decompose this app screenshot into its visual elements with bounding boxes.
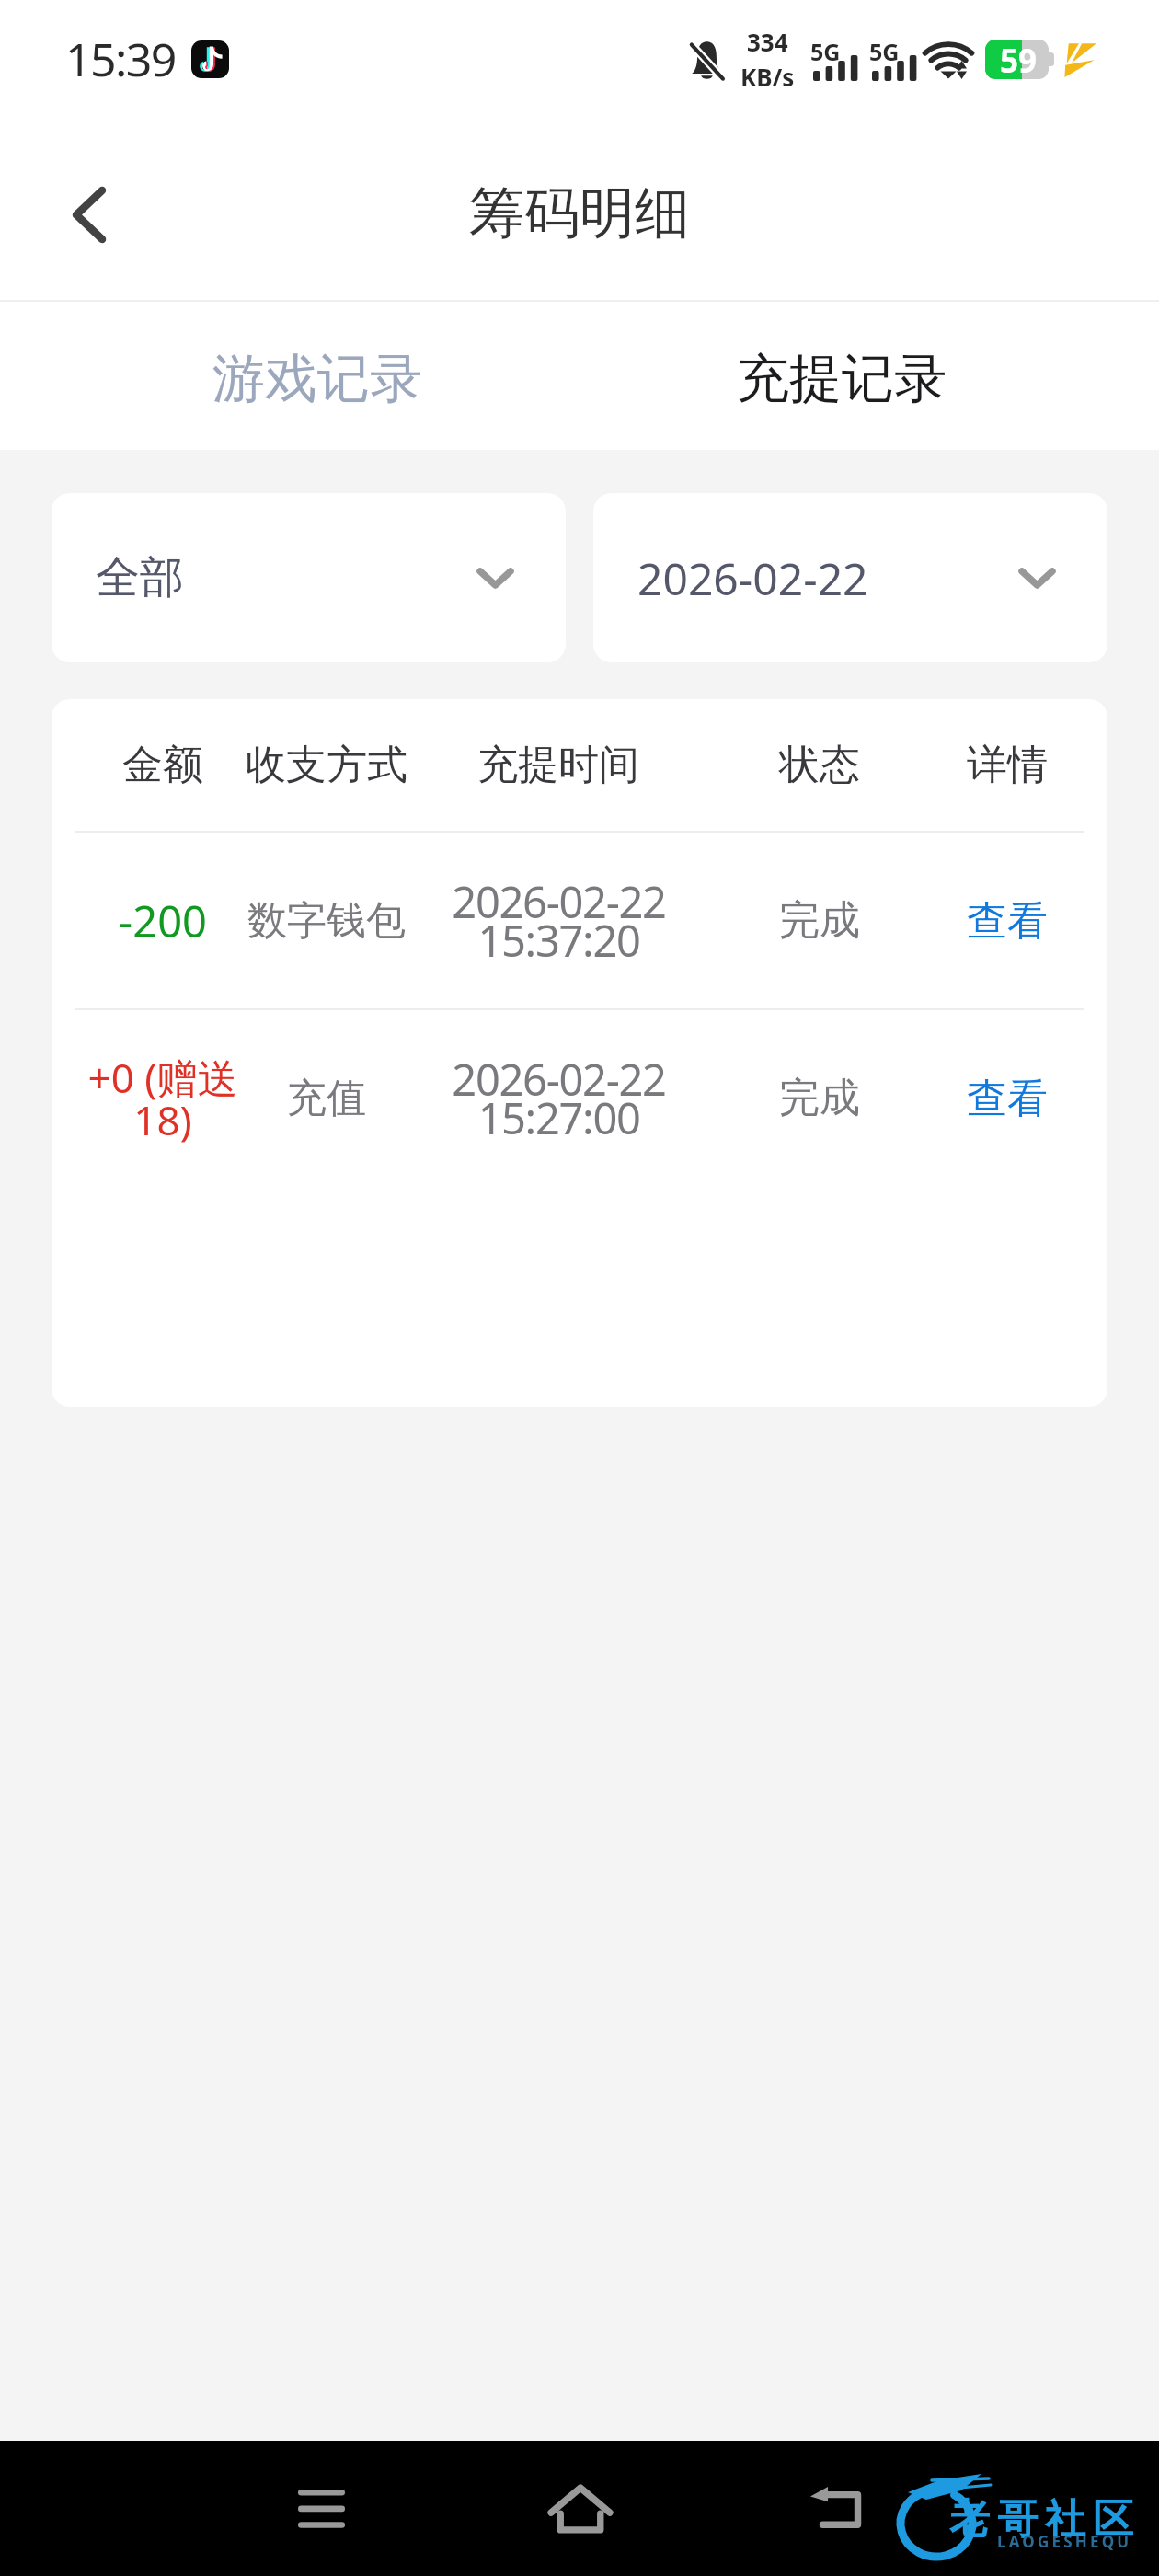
staticText: 完成: [779, 1073, 860, 1123]
button[interactable]: Back: [33, 155, 143, 265]
staticText: -200: [119, 891, 207, 950]
staticText: 筹码明细: [469, 178, 690, 248]
staticText: 5G: [869, 36, 900, 67]
staticText: 充值: [287, 1074, 366, 1123]
button[interactable]: Recents: [270, 2457, 373, 2559]
staticText: 充提记录: [737, 346, 947, 412]
staticText: 2026-02-22 15:27:00: [452, 1050, 666, 1147]
staticText: 15:39: [65, 28, 176, 90]
button[interactable]: Back: [785, 2457, 887, 2559]
staticText: 详情: [967, 740, 1048, 790]
button[interactable]: 全部: [52, 493, 566, 662]
staticText: 数字钱包: [247, 896, 406, 946]
staticText: 老哥社区: [946, 2494, 1137, 2545]
staticText: 查看: [967, 896, 1048, 947]
button[interactable]: 查看: [920, 1048, 1095, 1149]
staticText: 收支方式: [246, 740, 407, 790]
staticText: 游戏记录: [212, 346, 422, 412]
staticText: 59: [1000, 40, 1038, 78]
staticText: 金额: [122, 740, 203, 790]
staticText: 2026-02-22: [637, 548, 868, 608]
staticText: 状态: [779, 740, 860, 790]
staticText: 查看: [967, 1074, 1048, 1124]
button[interactable]: 游戏记录: [55, 302, 579, 450]
staticText: +0 (赠送 18): [66, 1050, 259, 1146]
staticText: 2026-02-22 15:37:20: [452, 872, 666, 970]
staticText: LAOGESHEQU: [997, 2531, 1132, 2552]
staticText: 334: [747, 26, 788, 58]
button[interactable]: 充提记录: [579, 302, 1104, 450]
staticText: 5G: [810, 36, 841, 67]
button[interactable]: Home: [529, 2457, 631, 2559]
staticText: 完成: [779, 895, 860, 946]
button[interactable]: 2026-02-22: [593, 493, 1107, 662]
staticText: 充提时间: [477, 740, 639, 790]
staticText: KB/s: [740, 61, 795, 93]
button[interactable]: 查看: [920, 870, 1095, 972]
staticText: 全部: [96, 550, 184, 605]
